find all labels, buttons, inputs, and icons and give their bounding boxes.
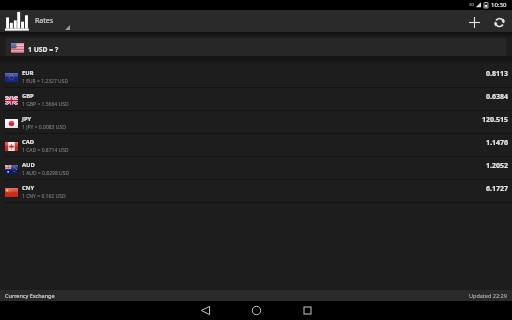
button[interactable]: CAD: [0, 134, 512, 157]
button[interactable]: EUR: [0, 65, 512, 88]
staticText: CAD: [22, 138, 34, 146]
staticText: 1 AUD = 0.8298 USD: [22, 170, 70, 177]
staticText: 6.1727: [486, 184, 508, 194]
button[interactable]: Recents: [282, 301, 332, 320]
button[interactable]: Home: [231, 301, 281, 320]
staticText: 0.6384: [486, 92, 508, 102]
staticText: 1 JPY = 0.0083 USD: [22, 124, 66, 131]
staticText: EUR: [22, 69, 34, 77]
staticText: 1 CNY = 0.162 USD: [22, 193, 66, 200]
button[interactable]: Back: [180, 301, 230, 320]
staticText: AUD: [22, 161, 35, 169]
staticText: 1 EUR = 1.2327 USD: [22, 78, 69, 85]
staticText: 3G: [469, 2, 475, 7]
button[interactable]: AUD: [0, 157, 512, 180]
staticText: 1 GBP = 1.5664 USD: [22, 101, 69, 108]
button[interactable]: GBP: [0, 88, 512, 111]
staticText: 1 CAD = 0.8714 USD: [22, 147, 69, 154]
staticText: Updated 22:29: [469, 292, 507, 299]
staticText: 10:30: [491, 1, 507, 9]
staticText: 1.2052: [486, 161, 508, 171]
staticText: 1 USD = ?: [28, 45, 59, 54]
staticText: GBP: [22, 92, 34, 100]
button[interactable]: CNY: [0, 180, 512, 203]
staticText: JPY: [22, 115, 32, 123]
button[interactable]: 1 USD = ?: [6, 38, 506, 56]
staticText: Rates: [35, 16, 54, 26]
staticText: Currency Exchange: [5, 292, 55, 299]
button[interactable]: JPY: [0, 111, 512, 134]
staticText: 0.8113: [486, 69, 508, 79]
staticText: 1.1476: [486, 138, 508, 148]
staticText: CNY: [22, 184, 35, 192]
button[interactable]: Refresh: [487, 10, 511, 32]
button[interactable]: Add: [461, 10, 487, 32]
staticText: 120.515: [482, 115, 508, 125]
